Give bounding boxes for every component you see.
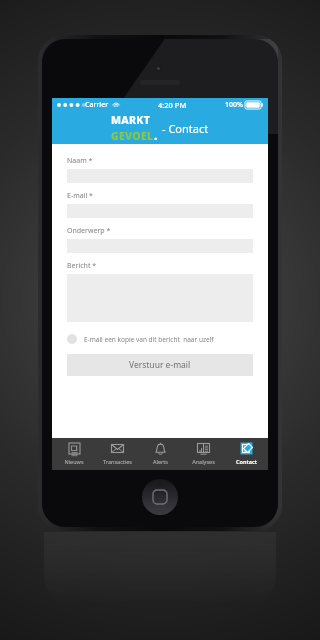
staticText: Verstuur e-mail xyxy=(129,359,191,371)
staticText: Carrier xyxy=(85,100,109,110)
staticText: Alerts xyxy=(153,458,168,465)
staticText: Analyses xyxy=(192,458,215,465)
staticText: Bericht * xyxy=(67,261,97,271)
button[interactable]: Analyses xyxy=(182,438,225,470)
button[interactable]: Home xyxy=(142,479,178,515)
staticText: GEVOEL xyxy=(111,129,154,143)
button[interactable]: Verstuur e-mail xyxy=(67,354,253,376)
button[interactable]: Transacties xyxy=(96,438,139,470)
staticText: . xyxy=(154,127,158,143)
staticText: Contact xyxy=(236,458,257,465)
staticText: Transacties xyxy=(103,458,132,465)
other: Nieuws xyxy=(67,441,82,456)
staticText: Naam * xyxy=(67,156,93,166)
staticText: 4:20 PM xyxy=(158,100,187,110)
staticText: MARKT xyxy=(111,113,151,127)
staticText: Onderwerp * xyxy=(67,226,111,236)
button[interactable]: Contact xyxy=(225,438,268,470)
staticText: 100% xyxy=(225,100,243,110)
staticText: E-mail een kopie van dit bericht naar uz… xyxy=(84,335,214,344)
other: Alerts xyxy=(153,441,168,456)
button[interactable]: E-mail een kopie van dit bericht naar uz… xyxy=(67,332,253,346)
staticText: Nieuws xyxy=(64,458,84,465)
button[interactable]: Nieuws xyxy=(52,438,96,470)
other: Contact xyxy=(239,441,254,456)
other: Analyses xyxy=(196,441,211,456)
other: Transacties xyxy=(110,441,125,456)
staticText: E-mail * xyxy=(67,191,93,201)
staticText: - Contact xyxy=(162,121,209,136)
button[interactable]: Alerts xyxy=(139,438,182,470)
